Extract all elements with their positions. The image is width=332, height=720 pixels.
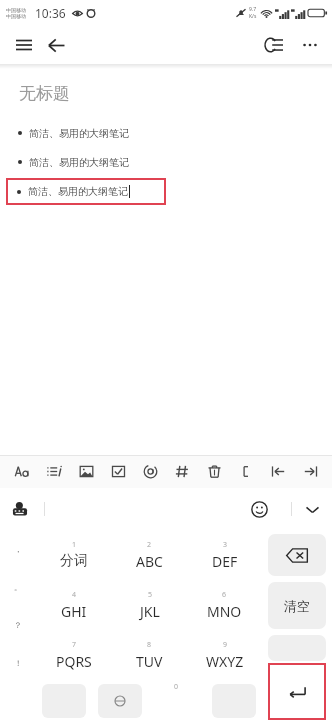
button[interactable]: More options xyxy=(294,29,326,61)
button[interactable]: 简洁、易用的大纲笔记 xyxy=(0,122,332,144)
button[interactable]: 6 xyxy=(187,580,262,630)
staticText: MNO xyxy=(207,602,242,621)
staticText: K/s xyxy=(249,13,257,20)
button[interactable]: Outline xyxy=(258,29,290,61)
button[interactable]: Enter xyxy=(268,663,326,720)
staticText: WXYZ xyxy=(206,652,244,671)
staticText: 3 xyxy=(223,540,228,550)
button[interactable]: Delete xyxy=(198,455,230,488)
staticText: 1 xyxy=(72,540,77,550)
button[interactable] xyxy=(36,680,92,720)
button[interactable]: 0 xyxy=(148,680,205,720)
staticText: 7 xyxy=(72,640,77,650)
staticText: 5 xyxy=(148,590,153,600)
staticText: PQRS xyxy=(56,652,92,671)
staticText: 4 xyxy=(72,590,77,600)
staticText: ！ xyxy=(14,658,22,668)
button[interactable]: 2 xyxy=(112,530,187,580)
staticText: ？ xyxy=(14,620,22,630)
button[interactable]: ， xyxy=(0,530,36,568)
staticText: 无标题 xyxy=(19,83,70,104)
staticText: ， xyxy=(14,544,22,554)
button[interactable]: 9 xyxy=(187,630,262,680)
button[interactable]: 简洁、易用的大纲笔记 xyxy=(0,151,332,173)
button[interactable]: Tag xyxy=(166,455,198,488)
button[interactable]: 4 xyxy=(36,580,112,630)
staticText: DEF xyxy=(212,552,238,571)
staticText: 9 xyxy=(223,640,228,650)
staticText: 6 xyxy=(222,590,227,600)
button[interactable]: 1 xyxy=(36,530,112,580)
staticText: 简洁、易用的大纲笔记 xyxy=(28,185,128,198)
button[interactable]: 3 xyxy=(187,530,262,580)
staticText: 。 xyxy=(14,582,22,592)
button[interactable] xyxy=(205,680,262,720)
staticText: GHI xyxy=(61,602,87,621)
button[interactable]: Text style xyxy=(6,455,38,488)
staticText: 清空 xyxy=(284,598,310,614)
staticText: 简洁、易用的大纲笔记 xyxy=(29,156,129,169)
button[interactable]: 5 xyxy=(112,580,187,630)
button[interactable] xyxy=(92,680,148,720)
button[interactable]: ？ xyxy=(0,606,36,644)
button[interactable]: Mention xyxy=(134,455,166,488)
staticText: 0 xyxy=(174,682,179,692)
staticText: TUV xyxy=(136,652,163,671)
button[interactable]: Backspace xyxy=(268,534,326,576)
button[interactable]: Indent xyxy=(294,455,326,488)
staticText: 10:36 xyxy=(35,5,66,21)
staticText: 分词 xyxy=(60,552,88,570)
button[interactable]: Emoji xyxy=(245,495,273,523)
button[interactable]: Outdent xyxy=(262,455,294,488)
staticText: 2 xyxy=(147,540,152,550)
button[interactable]: 7 xyxy=(36,630,112,680)
button[interactable]: Menu xyxy=(8,29,40,61)
staticText: ABC xyxy=(136,552,163,571)
staticText: 8 xyxy=(147,640,152,650)
staticText: JKL xyxy=(140,602,160,621)
staticText: 中国移动 xyxy=(6,7,26,13)
staticText: 9.7 xyxy=(249,6,257,13)
button[interactable]: ！ xyxy=(0,644,36,682)
staticText: 中国移动 xyxy=(6,13,26,19)
button[interactable]: Checkbox xyxy=(102,455,134,488)
button[interactable]: 清空 xyxy=(268,582,326,629)
button[interactable]: 简洁、易用的大纲笔记 xyxy=(6,178,166,205)
button[interactable]: Bracket xyxy=(230,455,262,488)
staticText: 简洁、易用的大纲笔记 xyxy=(29,127,129,140)
button[interactable]: Input method xyxy=(6,495,34,523)
button[interactable]: 8 xyxy=(112,630,187,680)
button[interactable]: Image xyxy=(70,455,102,488)
button[interactable]: List xyxy=(38,455,70,488)
button[interactable]: Back xyxy=(40,29,72,61)
button[interactable]: Hide keyboard xyxy=(298,495,326,523)
